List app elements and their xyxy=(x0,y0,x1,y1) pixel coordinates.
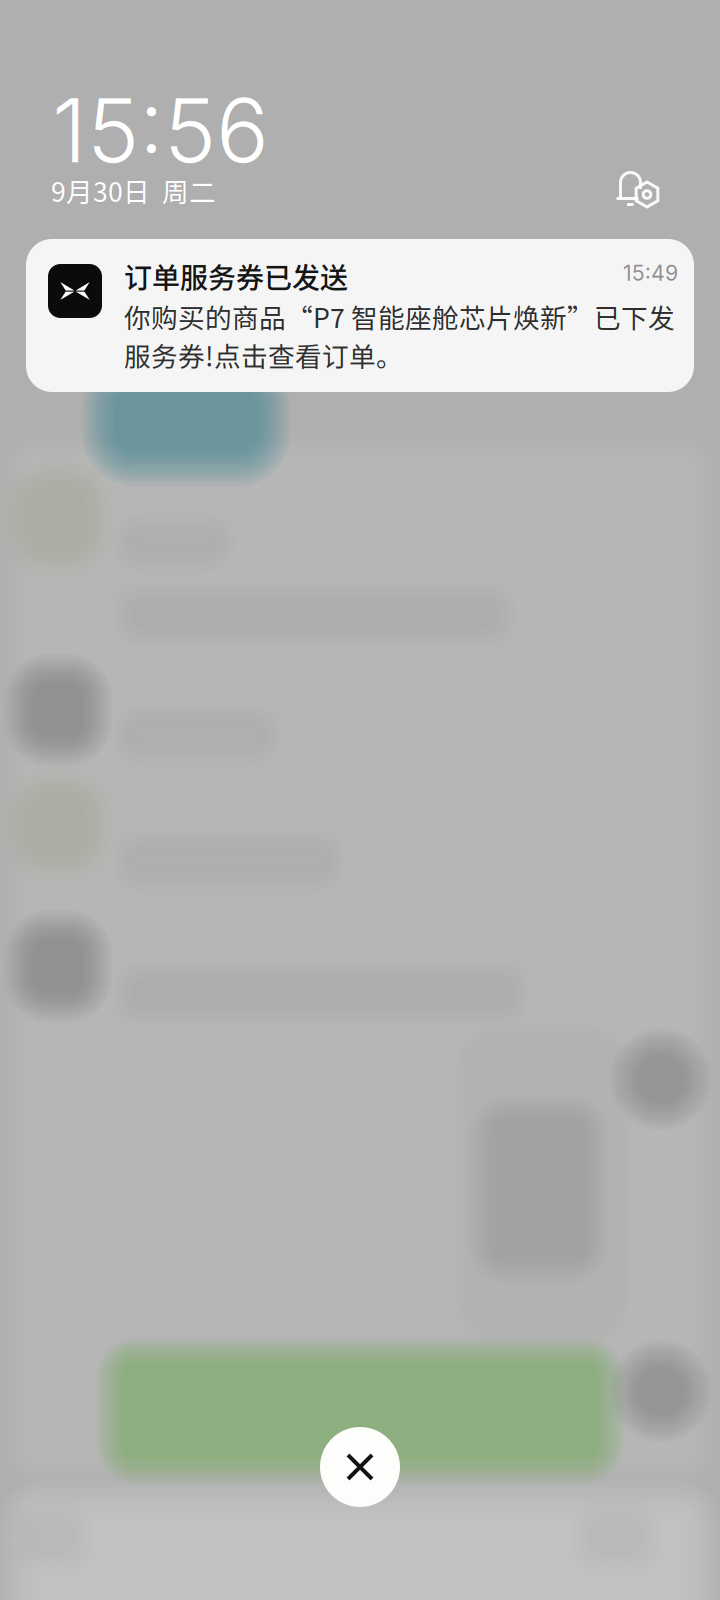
staticText: 15:49 xyxy=(623,260,678,286)
button[interactable]: Dismiss xyxy=(320,1427,400,1507)
button[interactable]: 订单服务券已发送 xyxy=(26,239,694,392)
staticText: 9月30日 周二 xyxy=(51,171,216,210)
staticText: 你购买的商品“P7 智能座舱芯片焕新”已下发服务券!点击查看订单。 xyxy=(124,297,675,374)
staticText: 订单服务券已发送 xyxy=(124,256,348,296)
staticText: 15:56 xyxy=(52,77,269,183)
button[interactable]: Notification settings xyxy=(616,167,662,209)
